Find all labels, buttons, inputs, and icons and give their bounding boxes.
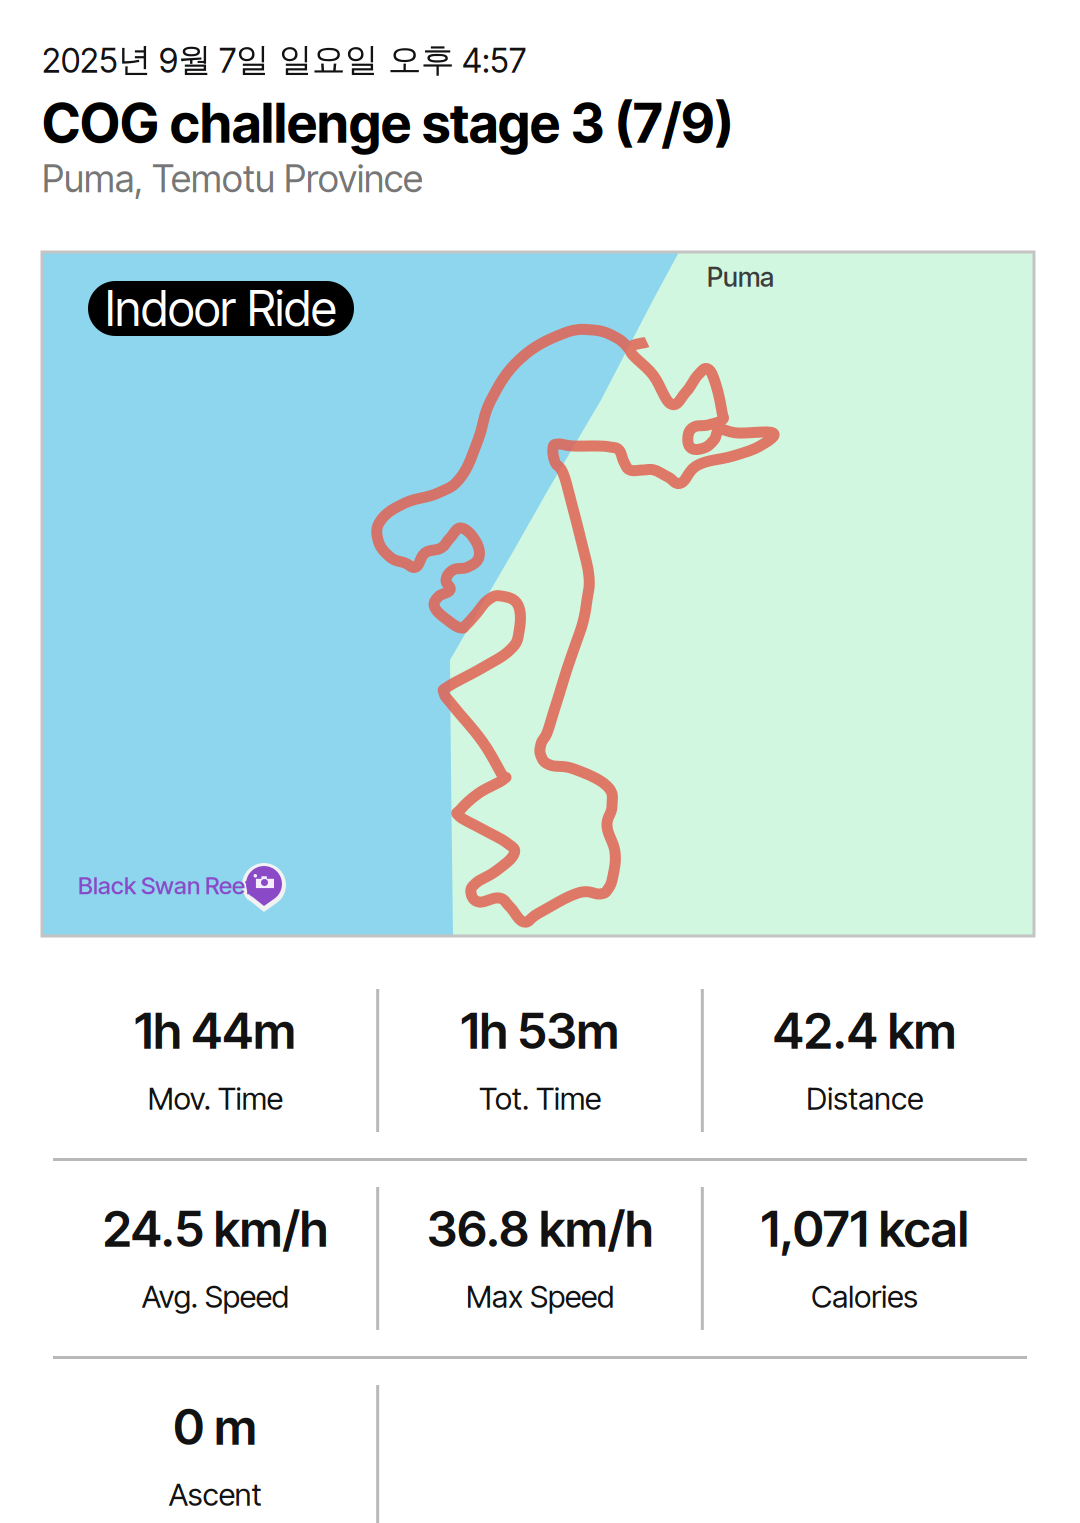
staticText: Ascent xyxy=(169,1476,262,1513)
button[interactable]: Black Swan Reef photo spot xyxy=(78,860,318,909)
staticText: Black Swan Reef xyxy=(78,871,253,900)
staticText: Tot. Time xyxy=(479,1080,601,1117)
staticText: 2025년 9월 7일 일요일 오후 4:57 xyxy=(42,39,526,81)
staticText: 1h 53m xyxy=(460,1001,619,1061)
staticText: Puma, Temotu Province xyxy=(42,156,423,201)
staticText: Calories xyxy=(811,1278,918,1315)
staticText: 1h 44m xyxy=(134,1001,296,1061)
button[interactable]: Indoor Ride xyxy=(88,281,354,336)
staticText: 1,071 kcal xyxy=(761,1199,969,1259)
staticText: Indoor Ride xyxy=(105,279,337,338)
staticText: 36.8 km/h xyxy=(427,1199,653,1259)
staticText: COG challenge stage 3 (7/9) xyxy=(42,91,733,155)
staticText: Max Speed xyxy=(466,1278,614,1315)
staticText: Avg. Speed xyxy=(142,1278,289,1315)
staticText: Distance xyxy=(806,1080,923,1117)
staticText: Puma xyxy=(707,261,774,293)
staticText: 24.5 km/h xyxy=(103,1199,328,1259)
staticText: 42.4 km xyxy=(773,1001,957,1061)
staticText: 0 m xyxy=(173,1397,257,1457)
staticText: Mov. Time xyxy=(148,1080,283,1117)
